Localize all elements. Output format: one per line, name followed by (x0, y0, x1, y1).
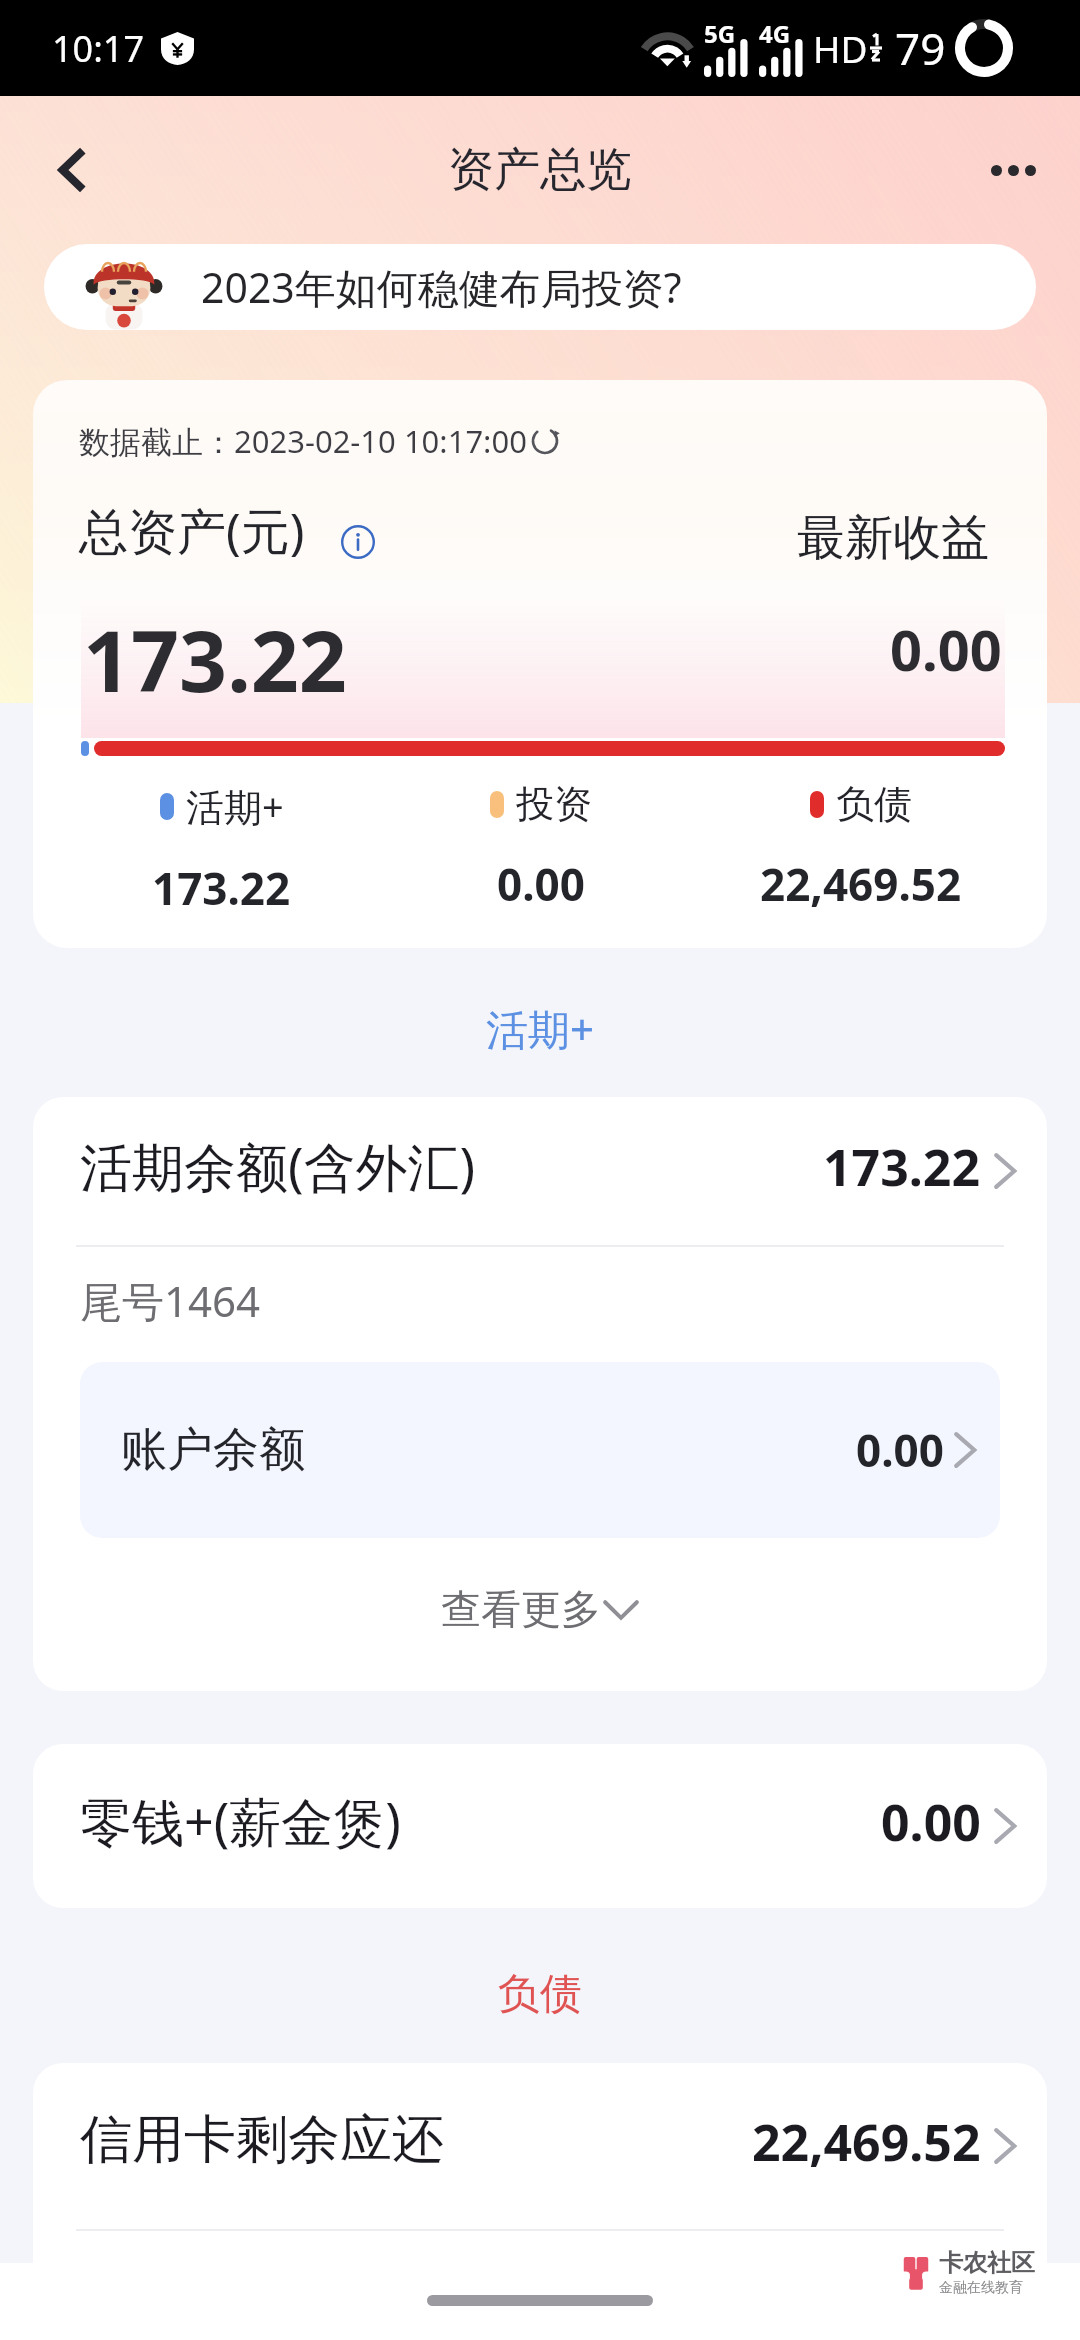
staticText: 0.00 (497, 854, 585, 914)
staticText: HD (813, 23, 868, 73)
staticText: 数据截止：2023-02-10 10:17:00 (79, 420, 527, 462)
staticText: 0.00 (856, 1420, 944, 1480)
staticText: 信用卡剩余应还 (80, 2107, 444, 2173)
button[interactable]: 零钱+(薪金煲) (33, 1744, 1047, 1908)
staticText: 查看更多 (441, 1584, 601, 1634)
button[interactable]: Back (32, 128, 116, 212)
button[interactable]: Info (341, 525, 375, 559)
button[interactable]: 查看更多 (33, 1580, 1047, 1638)
staticText: 22,469.52 (752, 2108, 981, 2176)
staticText: 零钱+(薪金煲) (80, 1785, 401, 1856)
staticText: 5G (704, 17, 736, 50)
staticText: 173.22 (152, 858, 291, 918)
button[interactable]: 账户余额 (80, 1362, 1000, 1538)
staticText: 0.00 (890, 611, 1002, 687)
staticText: 尾号1464 (80, 1272, 261, 1329)
staticText: 资产总览 (448, 141, 632, 199)
staticText: 最新收益 (797, 508, 989, 568)
staticText: 22,469.52 (760, 854, 962, 914)
staticText: 投资 (516, 780, 592, 828)
staticText: 活期余额(含外汇) (80, 1130, 476, 1201)
staticText: 负债 (836, 780, 912, 828)
staticText: 金融在线教育 (939, 2279, 1023, 2297)
staticText: 173.22 (83, 602, 347, 716)
staticText: 0.00 (881, 1788, 981, 1856)
staticText: 79 (895, 18, 946, 78)
staticText: 活期+ (186, 780, 284, 832)
staticText: 4G (759, 17, 791, 50)
staticText: 账户余额 (121, 1421, 305, 1479)
staticText: 活期+ (486, 1000, 595, 1057)
button[interactable]: More options (971, 128, 1055, 212)
staticText: 负债 (498, 1968, 582, 2021)
button[interactable]: 信用卡剩余应还 (33, 2063, 1047, 2229)
staticText: 10:17 (52, 24, 145, 73)
button[interactable]: 2023年如何稳健布局投资? (44, 244, 1036, 330)
staticText: 总资产(元) (79, 497, 305, 564)
staticText: 卡农社区 (939, 2248, 1035, 2278)
staticText: 173.22 (823, 1133, 981, 1201)
staticText: 2023年如何稳健布局投资? (201, 259, 682, 315)
button[interactable]: 活期余额(含外汇) (33, 1097, 1047, 1245)
